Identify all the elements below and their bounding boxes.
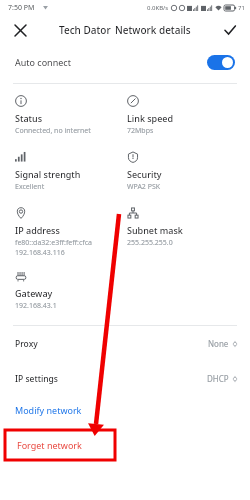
- button[interactable]: Modify network: [0, 398, 250, 422]
- staticText: 192.168.43.116: [15, 248, 65, 258]
- staticText: DHCP: [207, 373, 229, 384]
- staticText: 192.168.43.1: [15, 301, 57, 311]
- staticText: 71: [238, 4, 245, 12]
- button[interactable]: Save: [218, 18, 242, 42]
- button[interactable]: Proxy: [0, 326, 250, 361]
- button[interactable]: Subnet mask: [127, 207, 240, 248]
- button[interactable]: Link speed: [127, 95, 240, 136]
- staticText: fe80::da32:e3ff:feff:cfca: [15, 238, 92, 248]
- staticText: None: [208, 338, 229, 349]
- staticText: Network details: [115, 23, 191, 37]
- staticText: WPA2 PSK: [127, 182, 161, 192]
- staticText: 255.255.255.0: [127, 238, 173, 248]
- staticText: Signal strength: [15, 168, 81, 180]
- staticText: 7:50 PM: [8, 3, 35, 13]
- button[interactable]: IP address: [15, 207, 127, 258]
- button[interactable]: Status: [15, 95, 127, 136]
- staticText: Link speed: [127, 112, 174, 124]
- staticText: IP address: [15, 224, 60, 236]
- button[interactable]: Security: [127, 151, 240, 192]
- staticText: Modify network: [15, 404, 82, 416]
- staticText: Forget network: [17, 439, 82, 451]
- staticText: Security: [127, 168, 162, 180]
- button[interactable]: Forget network: [5, 430, 115, 460]
- staticText: Tech Dator: [59, 23, 111, 37]
- staticText: Status: [15, 112, 43, 124]
- button[interactable]: Auto connect: [0, 45, 250, 79]
- staticText: Excellent: [15, 182, 45, 192]
- staticText: Connected, no internet: [15, 126, 91, 136]
- button[interactable]: Signal strength: [15, 151, 127, 192]
- staticText: IP settings: [15, 373, 58, 385]
- staticText: Gateway: [15, 287, 53, 299]
- button[interactable]: Close: [8, 18, 32, 42]
- button[interactable]: Gateway: [15, 270, 127, 311]
- staticText: 72Mbps: [127, 126, 154, 136]
- button[interactable]: IP settings: [0, 361, 250, 396]
- staticText: Subnet mask: [127, 224, 183, 236]
- staticText: Proxy: [15, 338, 38, 350]
- staticText: Auto connect: [15, 56, 71, 68]
- staticText: 0.0KB/s: [147, 4, 169, 12]
